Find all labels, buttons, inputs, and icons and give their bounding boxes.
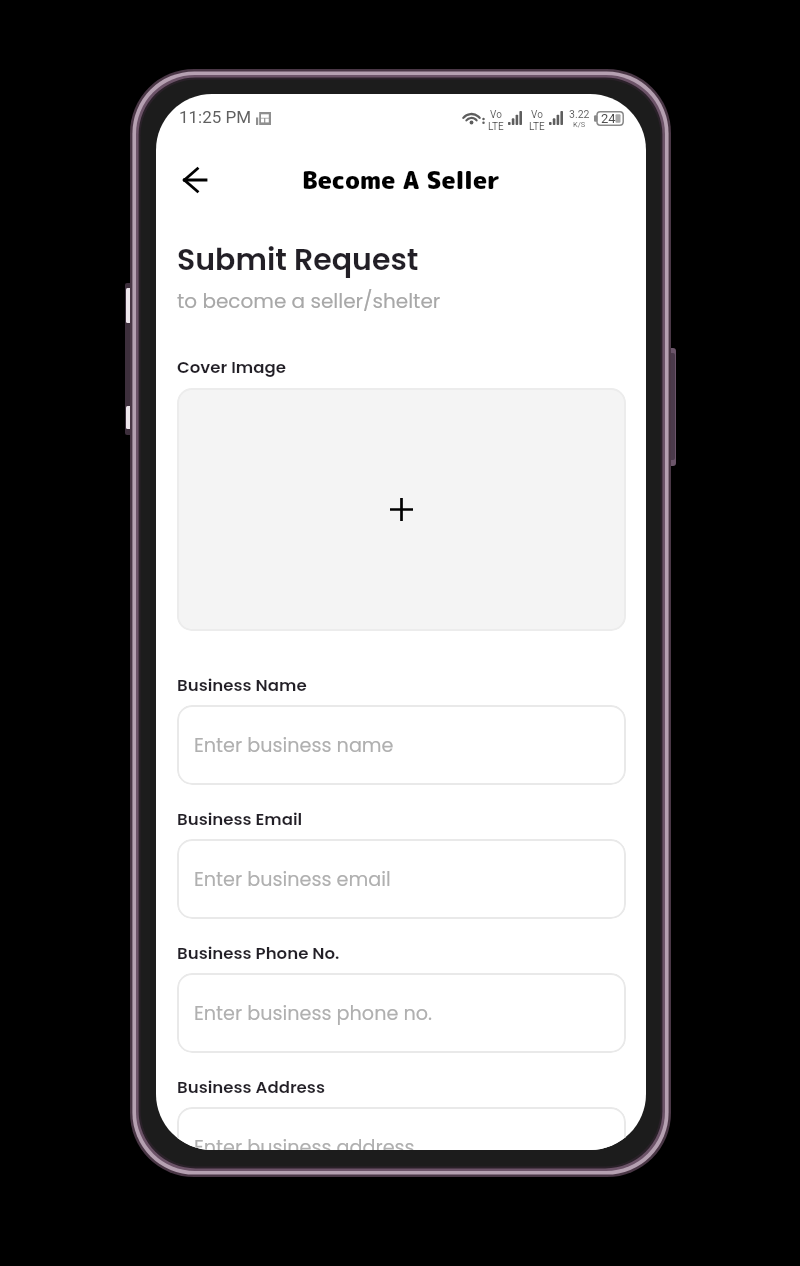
button[interactable]: Enter business email	[177, 839, 626, 919]
staticText: Business Email	[177, 808, 303, 831]
staticText: LTE	[529, 121, 545, 133]
staticText: to become a seller/shelter	[177, 287, 441, 315]
staticText: 11:25 PM	[179, 107, 252, 127]
staticText: Vo	[490, 109, 502, 121]
staticText: Vo	[531, 109, 543, 121]
staticText: Business Address	[177, 1076, 325, 1099]
staticText: Enter business address	[194, 1134, 415, 1150]
other: Add cover image	[390, 498, 413, 521]
staticText: 24	[601, 111, 616, 126]
staticText: K/S	[573, 120, 586, 129]
staticText: Enter business name	[194, 732, 394, 759]
staticText: Enter business email	[194, 866, 391, 893]
staticText: Become A Seller	[156, 163, 646, 197]
button[interactable]: Enter business phone no.	[177, 973, 626, 1053]
staticText: LTE	[488, 121, 504, 133]
button[interactable]: Back	[169, 154, 221, 206]
staticText: Cover Image	[177, 356, 286, 379]
staticText: Business Name	[177, 674, 307, 697]
staticText: Submit Request	[177, 239, 419, 281]
button[interactable]: Enter business address	[177, 1107, 626, 1150]
staticText: Enter business phone no.	[194, 1000, 433, 1027]
button[interactable]: Add cover image	[177, 388, 626, 631]
staticText: 3.22	[569, 108, 590, 120]
button[interactable]: Enter business name	[177, 705, 626, 785]
staticText: Business Phone No.	[177, 942, 340, 965]
